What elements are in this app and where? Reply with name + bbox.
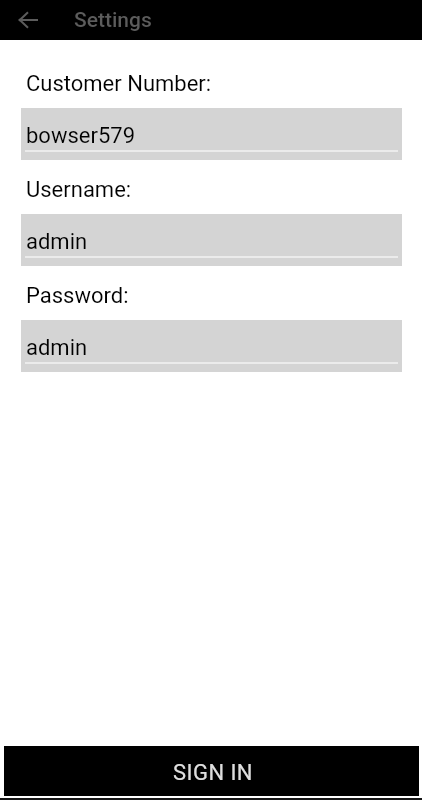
staticText: Password: — [26, 283, 129, 309]
staticText: Username: — [26, 177, 132, 203]
staticText: admin — [26, 229, 88, 255]
button[interactable]: admin — [21, 320, 402, 372]
button[interactable]: admin — [21, 214, 402, 266]
button[interactable]: SIGN IN — [4, 746, 419, 796]
staticText: SIGN IN — [173, 760, 254, 786]
staticText: bowser579 — [26, 123, 136, 149]
staticText: Customer Number: — [26, 71, 212, 97]
staticText: Settings — [74, 8, 152, 33]
button[interactable]: Back — [0, 0, 56, 40]
staticText: admin — [26, 335, 88, 361]
button[interactable]: bowser579 — [21, 108, 402, 160]
